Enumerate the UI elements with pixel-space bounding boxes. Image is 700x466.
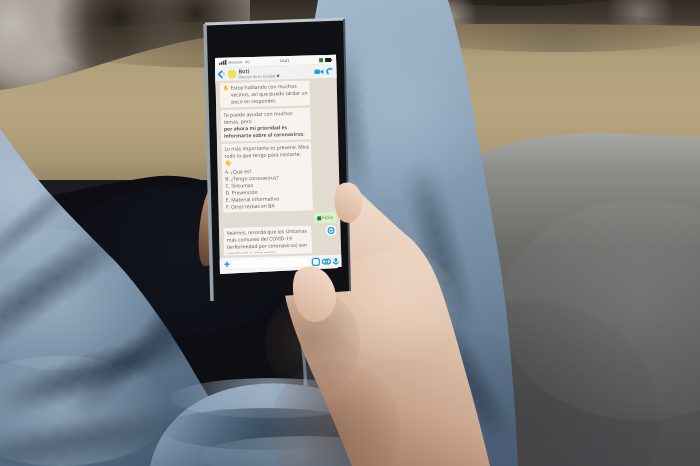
other: Sticker [312,258,319,265]
staticText: F. Otros temas en BA [226,202,275,211]
staticText: Movistar [228,59,243,65]
button[interactable]: ✋ [220,80,310,108]
staticText: Buenos Aires Ciudad [238,73,275,79]
staticText: 1 [222,71,225,78]
staticText: Te puedo ayudar con muchos temas, pero [223,110,309,126]
other: Camera [322,258,330,265]
other: Attach [223,261,230,268]
button[interactable]: Lo más importante es prevenir. Mirá todo… [221,141,313,213]
staticText: Veamos, recordá que los síntomas más com… [226,228,310,254]
staticText: 4G [245,59,250,64]
other: Voice message [333,258,338,265]
staticText: Lo más importante es prevenir. Mirá todo… [224,144,310,160]
button[interactable]: Veamos, recordá que los síntomas más com… [223,225,312,256]
staticText: Boti [238,67,249,74]
staticText: ✋ [223,85,230,91]
other: Scroll to bottom [325,225,337,236]
staticText: Estoy hablando con muchos vecinos, así q… [231,83,308,106]
staticText: 14:41 [279,58,290,63]
button[interactable]: Te puedo ayudar con muchos temas, pero [220,107,311,142]
staticText: B. ¿Tengo coronavirus? [225,174,279,183]
staticText: A. ¿Qué es? [225,168,252,176]
other: Voice call [326,68,333,75]
other: Video call [314,68,323,75]
staticText: 👇 [225,160,233,167]
staticText: C. Síntomas [225,182,253,190]
staticText: D. Prevención [225,189,259,197]
other: Back [218,71,222,78]
staticText: E. Material informativo [226,195,280,204]
staticText: por ahora mi prioridad es informarte sob… [224,124,309,140]
staticText: Hola [322,214,333,221]
